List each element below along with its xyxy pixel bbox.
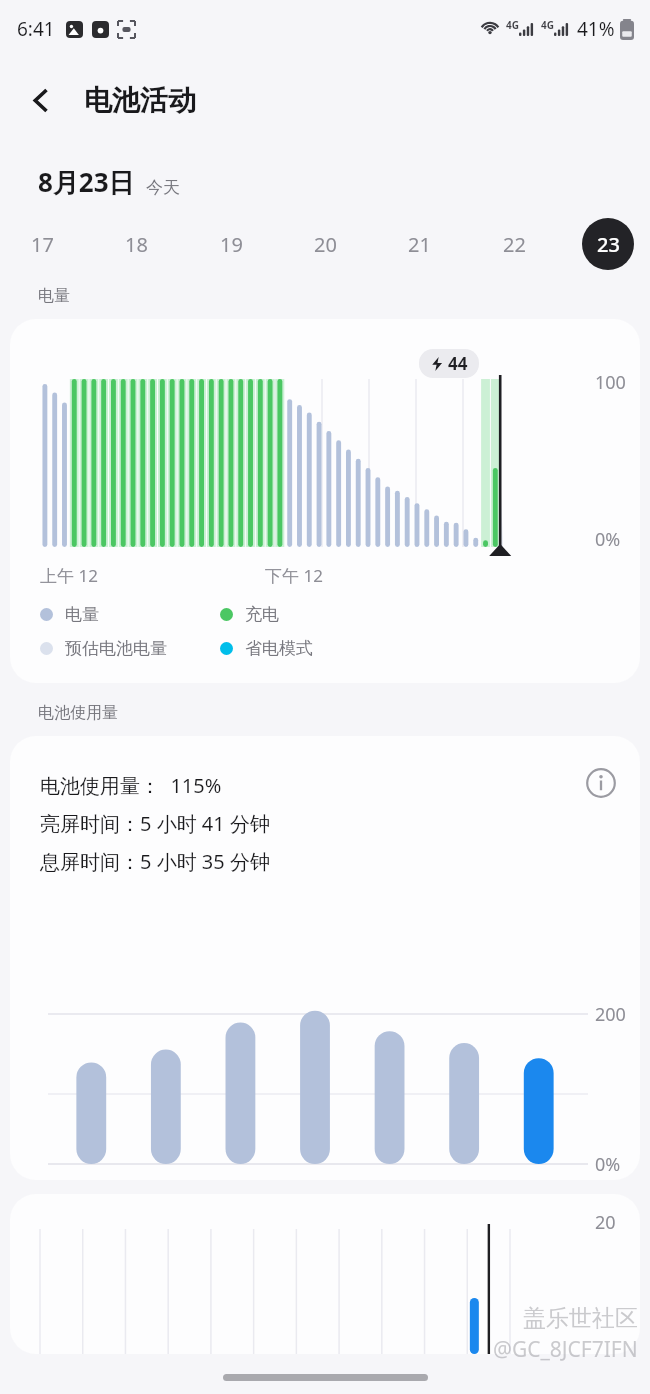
staticText: 4G [506, 18, 519, 32]
staticText: 17 [31, 231, 54, 258]
button[interactable]: 17 [16, 218, 68, 270]
staticText: 下午 12 [265, 564, 323, 587]
staticText: @GC_8JCF7IFN [493, 1335, 638, 1364]
staticText: 省电模式 [245, 638, 313, 659]
staticText: 44 [448, 352, 468, 375]
button[interactable]: 电池使用量： 115% [10, 736, 640, 1180]
staticText: 6:41 [17, 16, 55, 42]
staticText: 盖乐世社区 [523, 1304, 638, 1333]
button[interactable]: 18 [110, 218, 162, 270]
staticText: 200 [595, 1002, 626, 1027]
staticText: 充电 [245, 604, 279, 625]
staticText: 电量 [65, 604, 99, 625]
staticText: 18 [125, 231, 148, 258]
staticText: 预估电池电量 [65, 638, 167, 659]
button[interactable]: 23 [582, 218, 634, 270]
staticText: 上午 12 [40, 564, 98, 587]
staticText: 亮屏时间：5 小时 41 分钟 [40, 810, 270, 837]
staticText: 20 [595, 1210, 616, 1235]
staticText: 电池使用量： 115% [40, 772, 222, 799]
button[interactable]: 21 [393, 218, 445, 270]
button[interactable]: 20 [10, 1194, 640, 1354]
staticText: 21 [408, 231, 431, 258]
staticText: 4G [541, 18, 554, 32]
staticText: 0% [595, 1152, 621, 1177]
staticText: 19 [220, 231, 243, 258]
staticText: 息屏时间：5 小时 35 分钟 [40, 848, 270, 875]
button[interactable]: Back [12, 71, 70, 129]
staticText: 23 [597, 231, 620, 258]
staticText: 0% [595, 527, 621, 552]
staticText: 20 [314, 231, 337, 258]
staticText: 8月23日 [38, 164, 135, 200]
staticText: 电量 [38, 286, 70, 306]
button[interactable]: 100 [10, 319, 640, 683]
button[interactable]: 19 [205, 218, 257, 270]
button[interactable]: 20 [299, 218, 351, 270]
staticText: 今天 [146, 177, 180, 198]
staticText: 电池活动 [84, 83, 196, 118]
button[interactable]: Info [578, 760, 624, 806]
staticText: 22 [503, 231, 526, 258]
button[interactable]: 22 [488, 218, 540, 270]
staticText: 100 [595, 370, 626, 395]
staticText: 电池使用量 [38, 703, 118, 723]
staticText: 41% [577, 16, 615, 42]
